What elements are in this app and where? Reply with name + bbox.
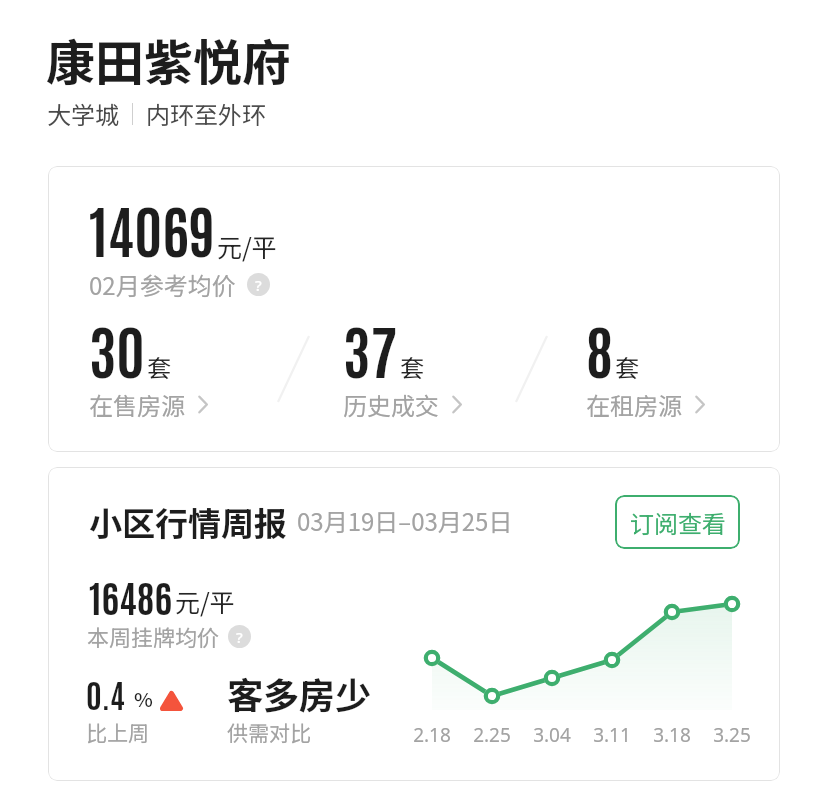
button[interactable]: 8 [586,311,706,422]
staticText: ? [255,275,262,295]
staticText: 元/平 [175,583,235,619]
staticText: 03月19日–03月25日 [297,503,513,538]
staticText: 3.11 [591,722,633,748]
staticText: 康田紫悦府 [46,24,292,95]
staticText: ? [236,627,243,647]
staticText: 2.25 [471,722,513,748]
staticText: 3.04 [531,722,573,748]
staticText: 内环至外环 [146,96,266,131]
staticText: 2.18 [411,722,453,748]
staticText: 大学城 [47,96,119,131]
staticText: % [134,684,153,713]
staticText: 3.18 [651,722,693,748]
staticText: 在租房源 [586,387,682,422]
staticText: 比上周 [86,717,149,747]
button[interactable]: 订阅查看 [615,495,740,549]
staticText: 套 [147,349,171,384]
staticText: 14069 [89,191,216,265]
staticText: 套 [400,349,424,384]
staticText: 元/平 [217,228,277,264]
staticText: 客多房少 [227,667,372,719]
staticText: 本周挂牌均价 [87,620,220,652]
staticText: 订阅查看 [630,505,726,540]
button[interactable]: 关于本周挂牌均价 [228,625,251,648]
staticText: 30 [89,311,145,386]
button[interactable]: 37 [343,311,463,422]
staticText: 0.4 [86,673,125,714]
staticText: 套 [615,349,639,384]
button[interactable]: 关于02月参考均价 [247,273,270,296]
staticText: 小区行情周报 [89,498,287,546]
button[interactable]: 30 [89,311,209,422]
staticText: 16486 [89,571,173,620]
staticText: 在售房源 [89,387,185,422]
staticText: 历史成交 [343,387,439,422]
staticText: 3.25 [711,722,753,748]
staticText: 02月参考均价 [89,267,236,302]
staticText: 供需对比 [227,717,311,747]
staticText: 37 [343,311,398,386]
staticText: 8 [586,311,613,386]
